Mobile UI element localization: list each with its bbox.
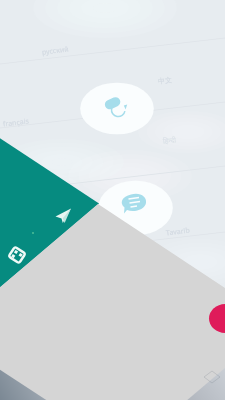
button[interactable]: Compose bbox=[176, 293, 224, 341]
button[interactable]: Scan QR code bbox=[2, 241, 32, 271]
button[interactable]: Send bbox=[47, 200, 81, 234]
staticText: हिन्दी bbox=[162, 135, 177, 147]
button[interactable]: русский bbox=[41, 44, 69, 58]
button[interactable]: Chat bbox=[105, 179, 167, 231]
staticText: français bbox=[2, 116, 29, 130]
button[interactable]: français bbox=[2, 116, 29, 130]
staticText: русский bbox=[41, 44, 69, 58]
button[interactable]: Conversation bbox=[87, 83, 147, 133]
button[interactable]: Tavarib bbox=[165, 226, 190, 238]
staticText: 中文 bbox=[157, 75, 172, 86]
button[interactable]: 中文 bbox=[157, 75, 172, 86]
staticText: Tavarib bbox=[165, 226, 190, 238]
button[interactable]: हिन्दी bbox=[162, 135, 177, 147]
